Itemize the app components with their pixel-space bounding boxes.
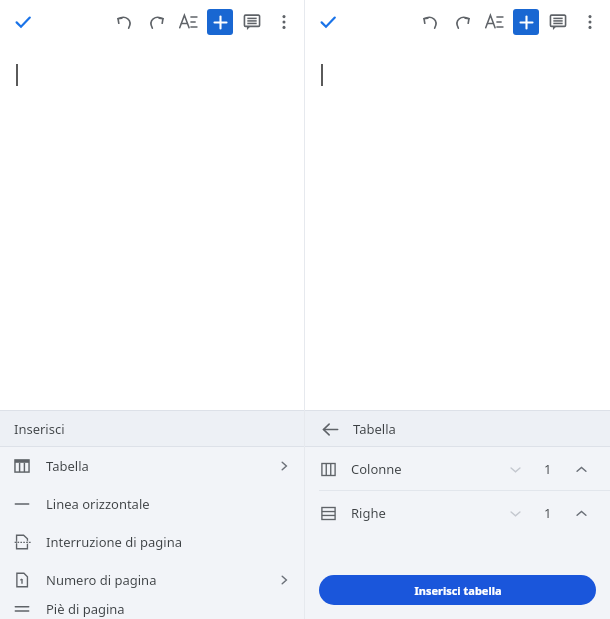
button[interactable]: Formatting — [478, 6, 510, 38]
staticText: Numero di pagina — [46, 571, 157, 589]
staticText: Inserisci — [14, 420, 65, 438]
staticText: Righe — [351, 504, 386, 522]
staticText: 1 — [544, 460, 552, 478]
button[interactable]: Linea orizzontale — [0, 485, 304, 523]
button[interactable]: Decrease Righe — [500, 498, 530, 528]
button[interactable]: Formatting — [172, 6, 204, 38]
staticText: 1 — [544, 504, 552, 522]
button[interactable]: Redo — [446, 6, 478, 38]
staticText: Linea orizzontale — [46, 495, 150, 513]
button[interactable]: Undo — [414, 6, 446, 38]
button[interactable]: Comments — [236, 6, 268, 38]
button[interactable]: Insert — [513, 9, 539, 35]
button[interactable]: Comments — [542, 6, 574, 38]
staticText: Colonne — [351, 460, 402, 478]
button[interactable]: Piè di pagina — [0, 599, 304, 619]
button[interactable]: Increase Colonne — [566, 454, 596, 484]
button[interactable]: Back — [317, 416, 343, 442]
staticText: Inserisci tabella — [414, 583, 502, 598]
staticText: Interruzione di pagina — [46, 533, 183, 551]
button[interactable]: Numero di pagina — [0, 561, 304, 599]
button[interactable]: Done — [311, 5, 345, 39]
button[interactable]: Redo — [140, 6, 172, 38]
button[interactable]: More options — [574, 6, 606, 38]
button[interactable]: Increase Righe — [566, 498, 596, 528]
staticText: Piè di pagina — [46, 600, 125, 618]
button[interactable]: Tabella — [0, 447, 304, 485]
button[interactable]: Done — [6, 5, 40, 39]
button[interactable]: Interruzione di pagina — [0, 523, 304, 561]
button[interactable]: Insert — [207, 9, 233, 35]
staticText: Tabella — [353, 420, 396, 438]
button[interactable]: Undo — [108, 6, 140, 38]
button[interactable]: Decrease Colonne — [500, 454, 530, 484]
button[interactable]: More options — [268, 6, 300, 38]
staticText: Tabella — [46, 457, 89, 475]
button[interactable]: Inserisci tabella — [319, 575, 596, 605]
